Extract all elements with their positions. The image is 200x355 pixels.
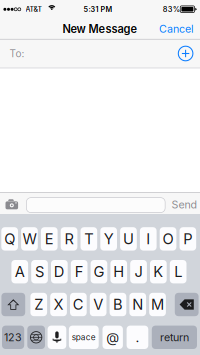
button[interactable]: P	[179, 227, 196, 251]
button[interactable]: W	[21, 227, 38, 251]
staticText: 5:31 PM	[83, 5, 112, 14]
button[interactable]: V	[90, 293, 106, 316]
staticText: N	[132, 296, 143, 313]
button[interactable]: H	[110, 260, 127, 283]
staticText: P	[183, 230, 192, 248]
staticText: New Message	[62, 22, 137, 36]
button[interactable]: Delete	[175, 293, 199, 316]
button[interactable]: M	[149, 293, 166, 316]
button[interactable]: Camera	[3, 195, 21, 213]
button[interactable]: L	[170, 260, 186, 283]
button[interactable]: F	[71, 260, 87, 283]
staticText: Cancel	[159, 22, 194, 35]
button[interactable]: 123	[2, 326, 24, 349]
staticText: 83%	[163, 5, 180, 14]
button[interactable]: I	[140, 227, 157, 251]
button[interactable]: B	[110, 293, 126, 316]
button[interactable]: return	[152, 326, 197, 349]
staticText: I	[146, 230, 150, 248]
button[interactable]: E	[41, 227, 58, 251]
button[interactable]: Z	[30, 293, 47, 316]
staticText: Q	[4, 230, 15, 248]
staticText: Send	[171, 198, 197, 211]
staticText: H	[113, 263, 124, 280]
button[interactable]: @	[102, 326, 123, 349]
staticText: Y	[104, 230, 114, 248]
button[interactable]: T	[80, 227, 97, 251]
button[interactable]: Cancel	[157, 19, 197, 38]
staticText: X	[54, 296, 64, 313]
staticText: U	[123, 230, 134, 248]
button[interactable]: N	[129, 293, 146, 316]
button[interactable]: Next keyboard	[27, 326, 45, 349]
staticText: M	[151, 296, 164, 313]
staticText: 123	[4, 331, 22, 344]
staticText: To:	[10, 47, 25, 60]
button[interactable]: Dictation	[48, 326, 66, 349]
button[interactable]: K	[150, 260, 167, 283]
staticText: C	[73, 296, 84, 313]
button[interactable]: .	[127, 326, 148, 349]
staticText: D	[54, 263, 65, 280]
button[interactable]: X	[50, 293, 67, 316]
button[interactable]: S	[31, 260, 48, 283]
staticText: .	[135, 329, 139, 345]
staticText: E	[45, 230, 54, 248]
button[interactable]: Add contact	[174, 41, 198, 65]
staticText: S	[35, 263, 44, 280]
button[interactable]: space	[69, 326, 99, 349]
button[interactable]: U	[120, 227, 137, 251]
button[interactable]: Q	[1, 227, 18, 251]
staticText: B	[113, 296, 123, 313]
staticText: V	[93, 296, 103, 313]
button[interactable]: D	[51, 260, 68, 283]
staticText: space	[72, 332, 96, 342]
staticText: G	[93, 263, 104, 280]
staticText: F	[75, 263, 84, 280]
staticText: L	[174, 263, 182, 280]
staticText: W	[22, 230, 36, 248]
button[interactable]: C	[70, 293, 87, 316]
staticText: Z	[34, 296, 43, 313]
staticText: T	[84, 230, 93, 248]
button[interactable]: J	[130, 260, 147, 283]
staticText: K	[153, 263, 163, 280]
button[interactable]: Send	[169, 195, 199, 213]
staticText: return	[160, 331, 189, 344]
staticText: R	[64, 230, 73, 248]
button[interactable]: A	[11, 260, 28, 283]
button[interactable]: G	[91, 260, 107, 283]
button[interactable]: R	[61, 227, 77, 251]
button[interactable]: Shift	[1, 293, 25, 316]
button[interactable]: O	[160, 227, 176, 251]
staticText: AT&T	[26, 5, 43, 13]
staticText: J	[135, 263, 143, 280]
staticText: A	[15, 263, 25, 280]
staticText: O	[163, 230, 174, 248]
staticText: @	[106, 329, 119, 345]
button[interactable]: Y	[100, 227, 117, 251]
